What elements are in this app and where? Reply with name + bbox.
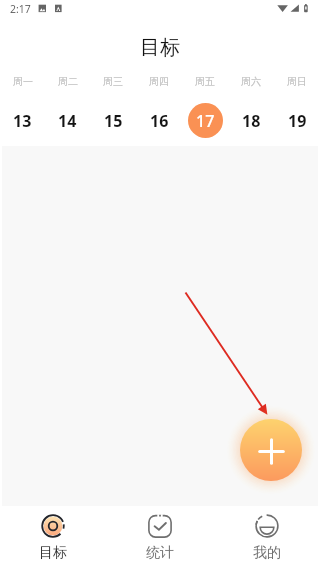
staticText: 17 bbox=[196, 110, 215, 132]
button[interactable]: 16 bbox=[142, 103, 177, 138]
staticText: 2:17 bbox=[10, 2, 31, 16]
staticText: 19 bbox=[288, 110, 307, 132]
staticText: 统计 bbox=[146, 544, 174, 562]
staticText: 14 bbox=[58, 110, 77, 132]
button[interactable]: 19 bbox=[280, 103, 315, 138]
button[interactable]: 15 bbox=[96, 103, 131, 138]
button[interactable]: 13 bbox=[5, 103, 40, 138]
staticText: 周一 bbox=[13, 75, 33, 88]
staticText: 我的 bbox=[253, 544, 281, 562]
staticText: 13 bbox=[13, 110, 32, 132]
button[interactable]: 目标 bbox=[0, 506, 106, 562]
staticText: 18 bbox=[242, 110, 261, 132]
button[interactable]: 我的 bbox=[213, 506, 320, 562]
staticText: 16 bbox=[150, 110, 169, 132]
staticText: 周六 bbox=[241, 75, 261, 88]
button[interactable]: Add bbox=[240, 419, 302, 481]
button[interactable]: 统计 bbox=[106, 506, 213, 562]
staticText: 周日 bbox=[287, 75, 307, 88]
staticText: 周三 bbox=[103, 75, 123, 88]
staticText: 目标 bbox=[39, 544, 67, 562]
button[interactable]: 17 bbox=[188, 103, 223, 138]
button[interactable]: 14 bbox=[50, 103, 85, 138]
staticText: 15 bbox=[104, 110, 123, 132]
button[interactable]: 18 bbox=[234, 103, 269, 138]
staticText: 周四 bbox=[149, 75, 169, 88]
staticText: 周五 bbox=[195, 75, 215, 88]
staticText: 周二 bbox=[58, 75, 78, 88]
staticText: 目标 bbox=[140, 35, 180, 60]
